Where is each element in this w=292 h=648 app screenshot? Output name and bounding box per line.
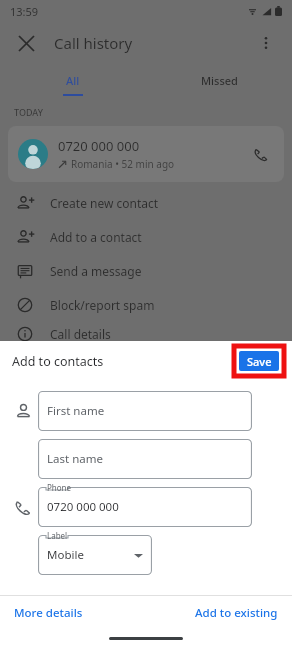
staticText: Add to contacts xyxy=(12,353,104,370)
button[interactable]: Block/report spam xyxy=(0,288,292,322)
staticText: Save xyxy=(247,354,272,369)
button[interactable]: Last name xyxy=(38,439,252,479)
button[interactable]: Phone xyxy=(38,487,252,527)
button[interactable]: Call back xyxy=(248,141,274,167)
button[interactable]: More details xyxy=(0,596,146,629)
staticText: 0720 000 000 xyxy=(47,499,119,515)
staticText: Send a message xyxy=(50,263,142,279)
button[interactable]: Missed xyxy=(146,64,292,96)
button[interactable]: Call details xyxy=(0,322,292,345)
button[interactable]: Create new contact xyxy=(0,186,292,220)
staticText: First name xyxy=(47,403,105,419)
staticText: 0720 000 000 xyxy=(58,137,140,155)
staticText: Add to a contact xyxy=(50,229,142,245)
button[interactable]: Add to existing xyxy=(146,596,292,629)
button[interactable]: Label xyxy=(38,535,152,575)
button[interactable]: First name xyxy=(38,391,252,431)
staticText: Last name xyxy=(47,451,103,467)
button[interactable]: Close xyxy=(12,29,40,57)
staticText: All xyxy=(66,73,80,88)
staticText: 13:59 xyxy=(10,4,39,19)
button[interactable]: 0720 000 000 xyxy=(8,126,284,182)
button[interactable]: Save xyxy=(239,351,279,371)
staticText: Mobile xyxy=(47,547,84,563)
staticText: More details xyxy=(14,605,83,621)
staticText: Label xyxy=(47,530,68,541)
button[interactable]: Send a message xyxy=(0,254,292,288)
staticText: TODAY xyxy=(14,106,43,118)
staticText: Call history xyxy=(54,33,133,53)
staticText: Create new contact xyxy=(50,195,159,211)
button[interactable]: More options xyxy=(252,29,280,57)
staticText: Missed xyxy=(201,73,238,88)
staticText: Romania • 52 min ago xyxy=(71,157,175,171)
staticText: Add to existing xyxy=(195,605,278,621)
staticText: Call details xyxy=(50,326,111,342)
button[interactable]: Add to a contact xyxy=(0,220,292,254)
button[interactable]: All xyxy=(0,64,146,96)
staticText: Block/report spam xyxy=(50,297,155,313)
staticText: Phone xyxy=(47,482,72,493)
